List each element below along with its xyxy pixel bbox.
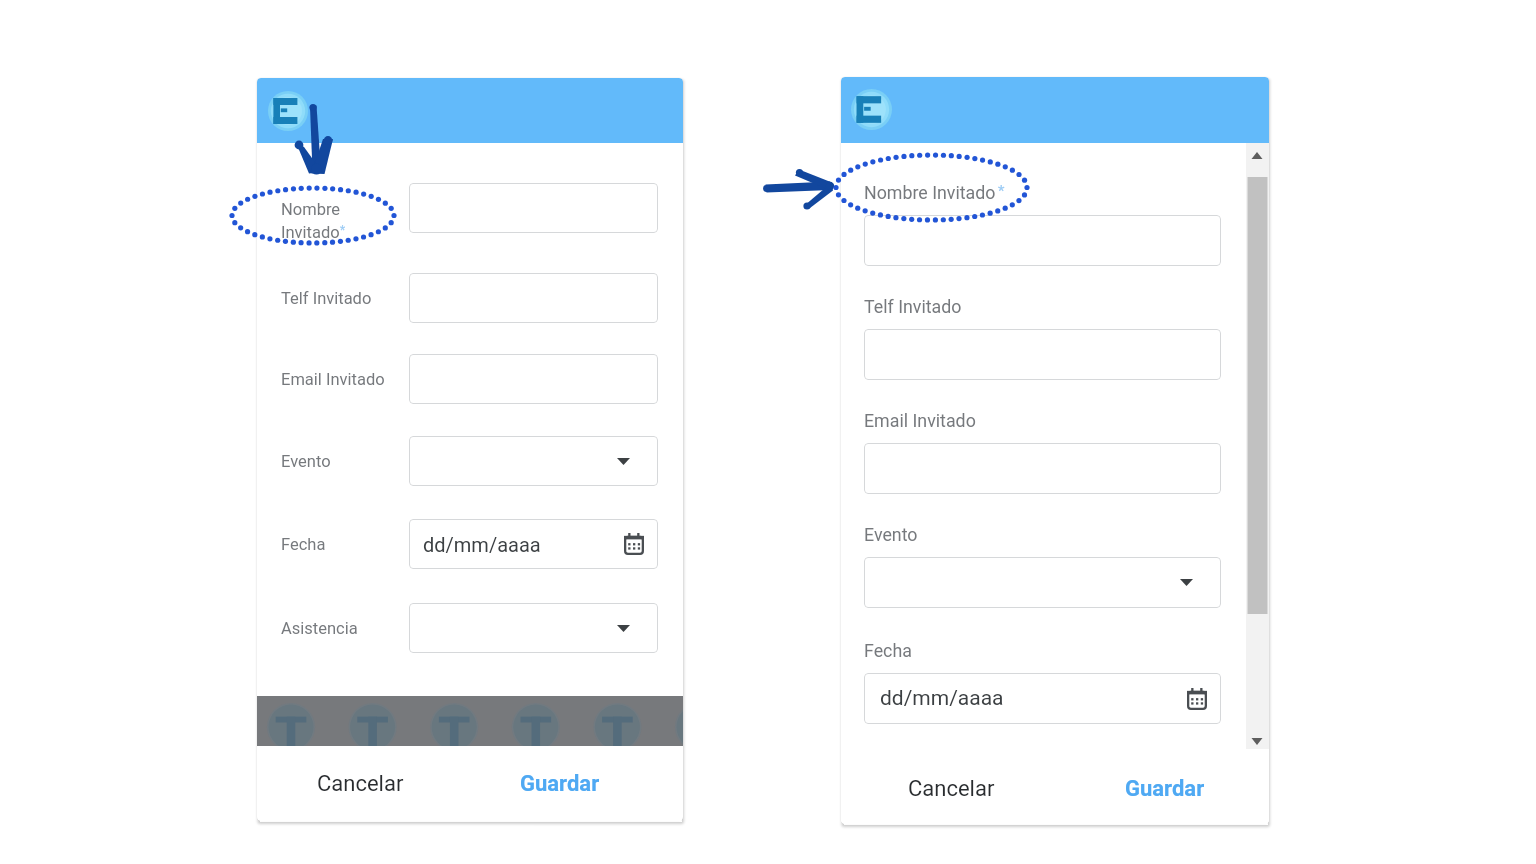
button[interactable]: Input field [864,329,1221,380]
button[interactable]: Input field [409,603,658,653]
button[interactable]: Input field [409,519,658,569]
other: App logo [851,89,892,130]
staticText: Cancelar [908,776,995,802]
button[interactable]: Advertisement [257,696,683,746]
staticText: Nombre Invitado [864,182,996,203]
button[interactable]: Input field [864,673,1221,724]
staticText: Telf Invitado [281,289,372,308]
button[interactable]: Input field [409,436,658,486]
staticText: Fecha [864,640,912,661]
staticText: Fecha [281,535,326,554]
button[interactable]: Input field [864,215,1221,266]
button[interactable]: Input field [864,557,1221,608]
button[interactable]: Guardar [496,758,624,810]
staticText: Asistencia [281,619,358,638]
staticText: Guardar [520,771,600,797]
staticText: Email Invitado [281,370,385,389]
button[interactable]: Guardar [1101,763,1229,815]
button[interactable]: Cancelar [887,763,1015,815]
staticText: * [998,182,1005,200]
button[interactable]: Input field [409,183,658,233]
staticText: Guardar [1125,776,1205,802]
staticText: Telf Invitado [864,296,962,317]
button[interactable]: Scroll [1246,143,1269,749]
other: App logo [268,91,308,131]
staticText: Evento [281,452,331,471]
staticText: * [340,223,346,237]
staticText: dd/mm/aaaa [423,533,541,556]
button[interactable]: Cancelar [296,758,424,810]
staticText: Evento [864,524,918,545]
staticText: Cancelar [317,771,404,797]
staticText: Email Invitado [864,410,976,431]
button[interactable]: Input field [409,273,658,323]
staticText: Nombre [281,200,341,219]
button[interactable]: Input field [864,443,1221,494]
staticText: dd/mm/aaaa [880,686,1004,711]
staticText: Invitado [281,223,340,242]
button[interactable]: Input field [409,354,658,404]
